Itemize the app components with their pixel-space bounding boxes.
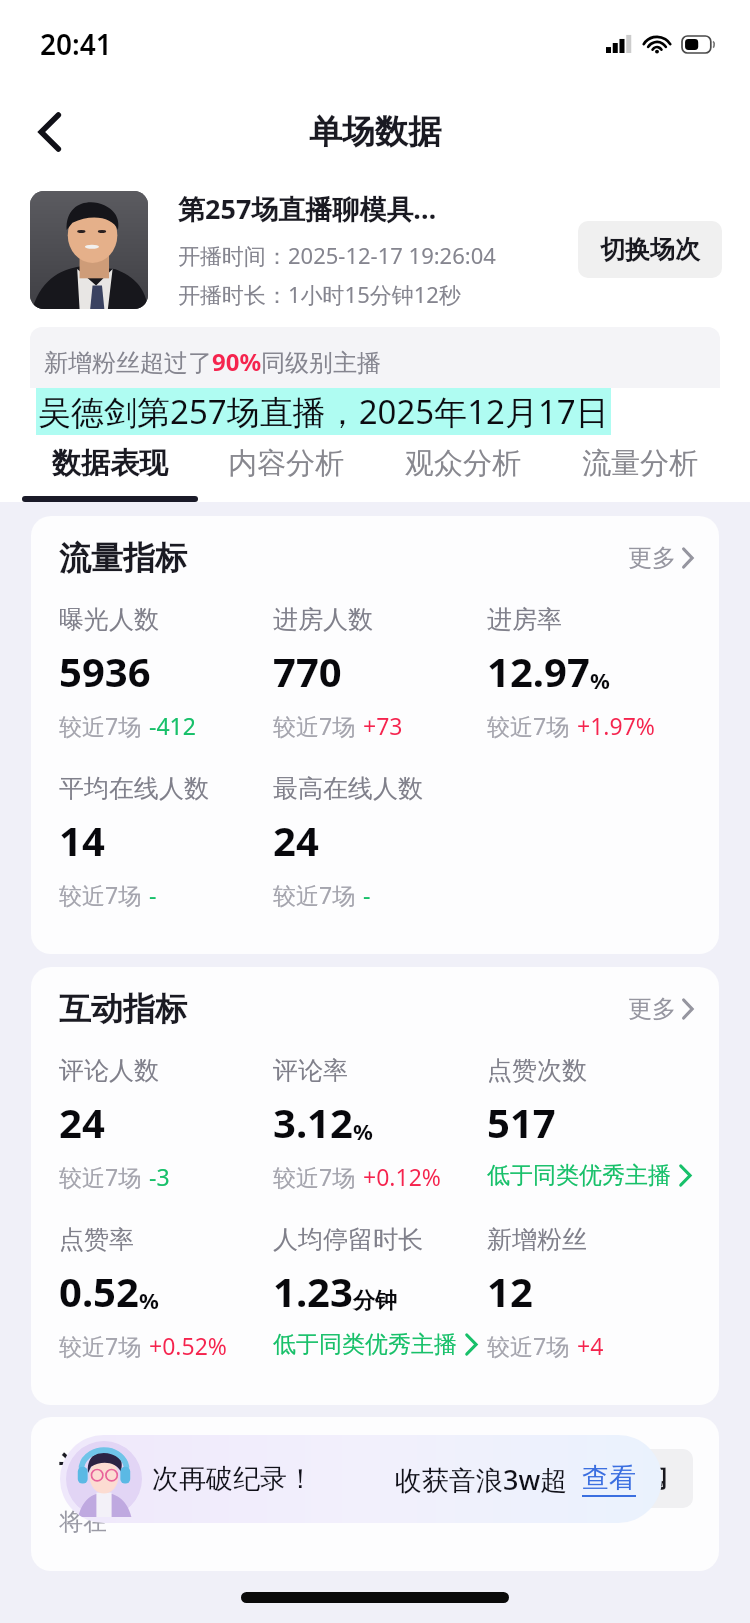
- staticText: 曝光人数: [59, 604, 159, 635]
- staticText: -: [363, 879, 371, 910]
- button[interactable]: 数据表现: [22, 445, 198, 502]
- staticText: 将在: [59, 1507, 107, 1537]
- staticText: 最高在线人数: [273, 773, 423, 804]
- staticText: 12.97: [487, 644, 590, 698]
- staticText: 24: [59, 1095, 105, 1149]
- staticText: 收获音浪3w超: [395, 1461, 568, 1498]
- staticText: 3.12: [273, 1095, 353, 1149]
- staticText: 5936: [59, 644, 151, 698]
- button[interactable]: 低于同类优秀主播: [487, 1161, 691, 1190]
- staticText: 770: [273, 644, 342, 698]
- button[interactable]: 互动指标: [31, 967, 719, 1029]
- staticText: 1.23: [273, 1264, 353, 1318]
- staticText: 内容分析: [228, 445, 344, 482]
- staticText: 进房率: [487, 604, 562, 635]
- button[interactable]: 内容分析: [198, 445, 374, 502]
- staticText: +1.97%: [577, 710, 655, 741]
- staticText: 较近7场: [59, 710, 142, 741]
- staticText: 更多: [628, 994, 676, 1024]
- staticText: 较近7场: [273, 710, 356, 741]
- button[interactable]: Back: [22, 104, 78, 160]
- staticText: 新增粉丝: [487, 1224, 587, 1255]
- staticText: 点赞率: [59, 1224, 134, 1255]
- staticText: 更多: [628, 543, 676, 573]
- staticText: 单场数据: [309, 111, 441, 153]
- staticText: 较近7场: [59, 879, 142, 910]
- staticText: 低于同类优秀主播: [273, 1330, 457, 1359]
- staticText: 较近7场: [273, 1161, 356, 1192]
- staticText: 评论率: [273, 1055, 348, 1086]
- staticText: -412: [149, 710, 196, 741]
- staticText: 新增粉丝超过了90%同级别主播: [44, 345, 382, 378]
- staticText: 较近7场: [59, 1330, 142, 1361]
- staticText: 流量指标: [59, 538, 187, 578]
- staticText: 517: [487, 1095, 556, 1149]
- staticText: 平均在线人数: [59, 773, 209, 804]
- staticText: 切换场次: [600, 234, 700, 265]
- staticText: +0.12%: [363, 1161, 441, 1192]
- staticText: %: [353, 1116, 373, 1146]
- staticText: 较近7场: [487, 1330, 570, 1361]
- staticText: 12: [487, 1264, 533, 1318]
- button[interactable]: 订阅: [591, 1449, 693, 1508]
- staticText: 评论人数: [59, 1055, 159, 1086]
- staticText: 开播时长：1小时15分钟12秒: [178, 279, 461, 309]
- staticText: -: [149, 879, 157, 910]
- staticText: 较近7场: [487, 710, 570, 741]
- button[interactable]: 次再破纪录！: [60, 1435, 662, 1523]
- button[interactable]: 低于同类优秀主播: [273, 1330, 477, 1359]
- staticText: 分钟: [353, 1287, 397, 1315]
- button[interactable]: 流量分析: [551, 445, 728, 502]
- staticText: 开播时间：2025-12-17 19:26:04: [178, 240, 496, 270]
- staticText: 24: [273, 813, 319, 867]
- staticText: 进房人数: [273, 604, 373, 635]
- button[interactable]: 查看: [582, 1461, 636, 1497]
- button[interactable]: 流量指标: [31, 516, 719, 578]
- staticText: %: [139, 1285, 159, 1315]
- staticText: 流量分析: [582, 445, 698, 482]
- staticText: 第257场直播聊模具…: [178, 190, 437, 227]
- staticText: %: [590, 665, 610, 695]
- staticText: 观众分析: [405, 445, 521, 482]
- staticText: 吴德剑第257场直播，2025年12月17日: [38, 389, 609, 434]
- staticText: 订阅直播复盘站内信: [59, 1449, 329, 1487]
- staticText: 较近7场: [273, 879, 356, 910]
- staticText: 0.52: [59, 1264, 139, 1318]
- staticText: +4: [577, 1330, 604, 1361]
- staticText: 14: [59, 813, 105, 867]
- staticText: 较近7场: [59, 1161, 142, 1192]
- staticText: 互动指标: [59, 989, 187, 1029]
- staticText: +0.52%: [149, 1330, 227, 1361]
- staticText: 低于同类优秀主播: [487, 1161, 671, 1190]
- staticText: 点赞次数: [487, 1055, 587, 1086]
- staticText: 次再破纪录！: [152, 1462, 314, 1496]
- staticText: 20:41: [40, 25, 112, 63]
- button[interactable]: 观众分析: [374, 445, 551, 502]
- button[interactable]: 切换场次: [578, 221, 722, 278]
- staticText: 数据表现: [52, 445, 168, 482]
- staticText: +73: [363, 710, 403, 741]
- staticText: -3: [149, 1161, 170, 1192]
- staticText: 订阅: [617, 1463, 667, 1494]
- staticText: 人均停留时长: [273, 1224, 423, 1255]
- staticText: 查看: [582, 1461, 636, 1495]
